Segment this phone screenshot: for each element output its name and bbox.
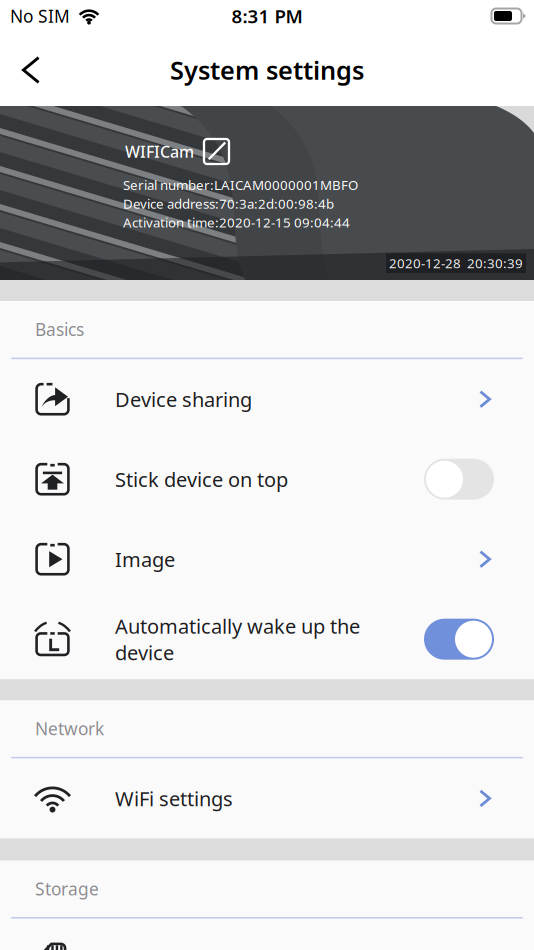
- staticText: Storage: [35, 877, 99, 900]
- staticText: Serial number:LAICAM0000001MBFO: [123, 176, 358, 194]
- staticText: Automatically wake up the device: [115, 613, 360, 666]
- staticText: Activation time:2020-12-15 09:04:44: [123, 213, 350, 231]
- staticText: Stick device on top: [115, 466, 288, 492]
- button[interactable]: Device sharing: [0, 359, 534, 439]
- button[interactable]: WiFi settings: [0, 758, 534, 838]
- staticText: No SIM: [10, 4, 70, 27]
- staticText: System settings: [170, 53, 364, 87]
- staticText: Device address:70:3a:2d:00:98:4b: [123, 195, 334, 212]
- staticText: WiFi settings: [115, 785, 233, 812]
- staticText: WIFICam: [125, 141, 194, 162]
- button[interactable]: Stick device on top: [0, 439, 534, 519]
- button[interactable]: Automatically wake up the device: [0, 599, 534, 679]
- staticText: Basics: [35, 318, 84, 341]
- staticText: Network: [35, 717, 104, 740]
- staticText: Image: [115, 546, 175, 572]
- button[interactable]: SD card: [0, 919, 534, 950]
- button[interactable]: Image: [0, 519, 534, 599]
- staticText: Device sharing: [115, 386, 252, 412]
- staticText: 8:31 PM: [231, 4, 302, 28]
- button[interactable]: Back: [0, 44, 70, 95]
- button[interactable]: Rename device: [204, 139, 229, 164]
- staticText: 2020-12-28 20:30:39: [389, 254, 523, 272]
